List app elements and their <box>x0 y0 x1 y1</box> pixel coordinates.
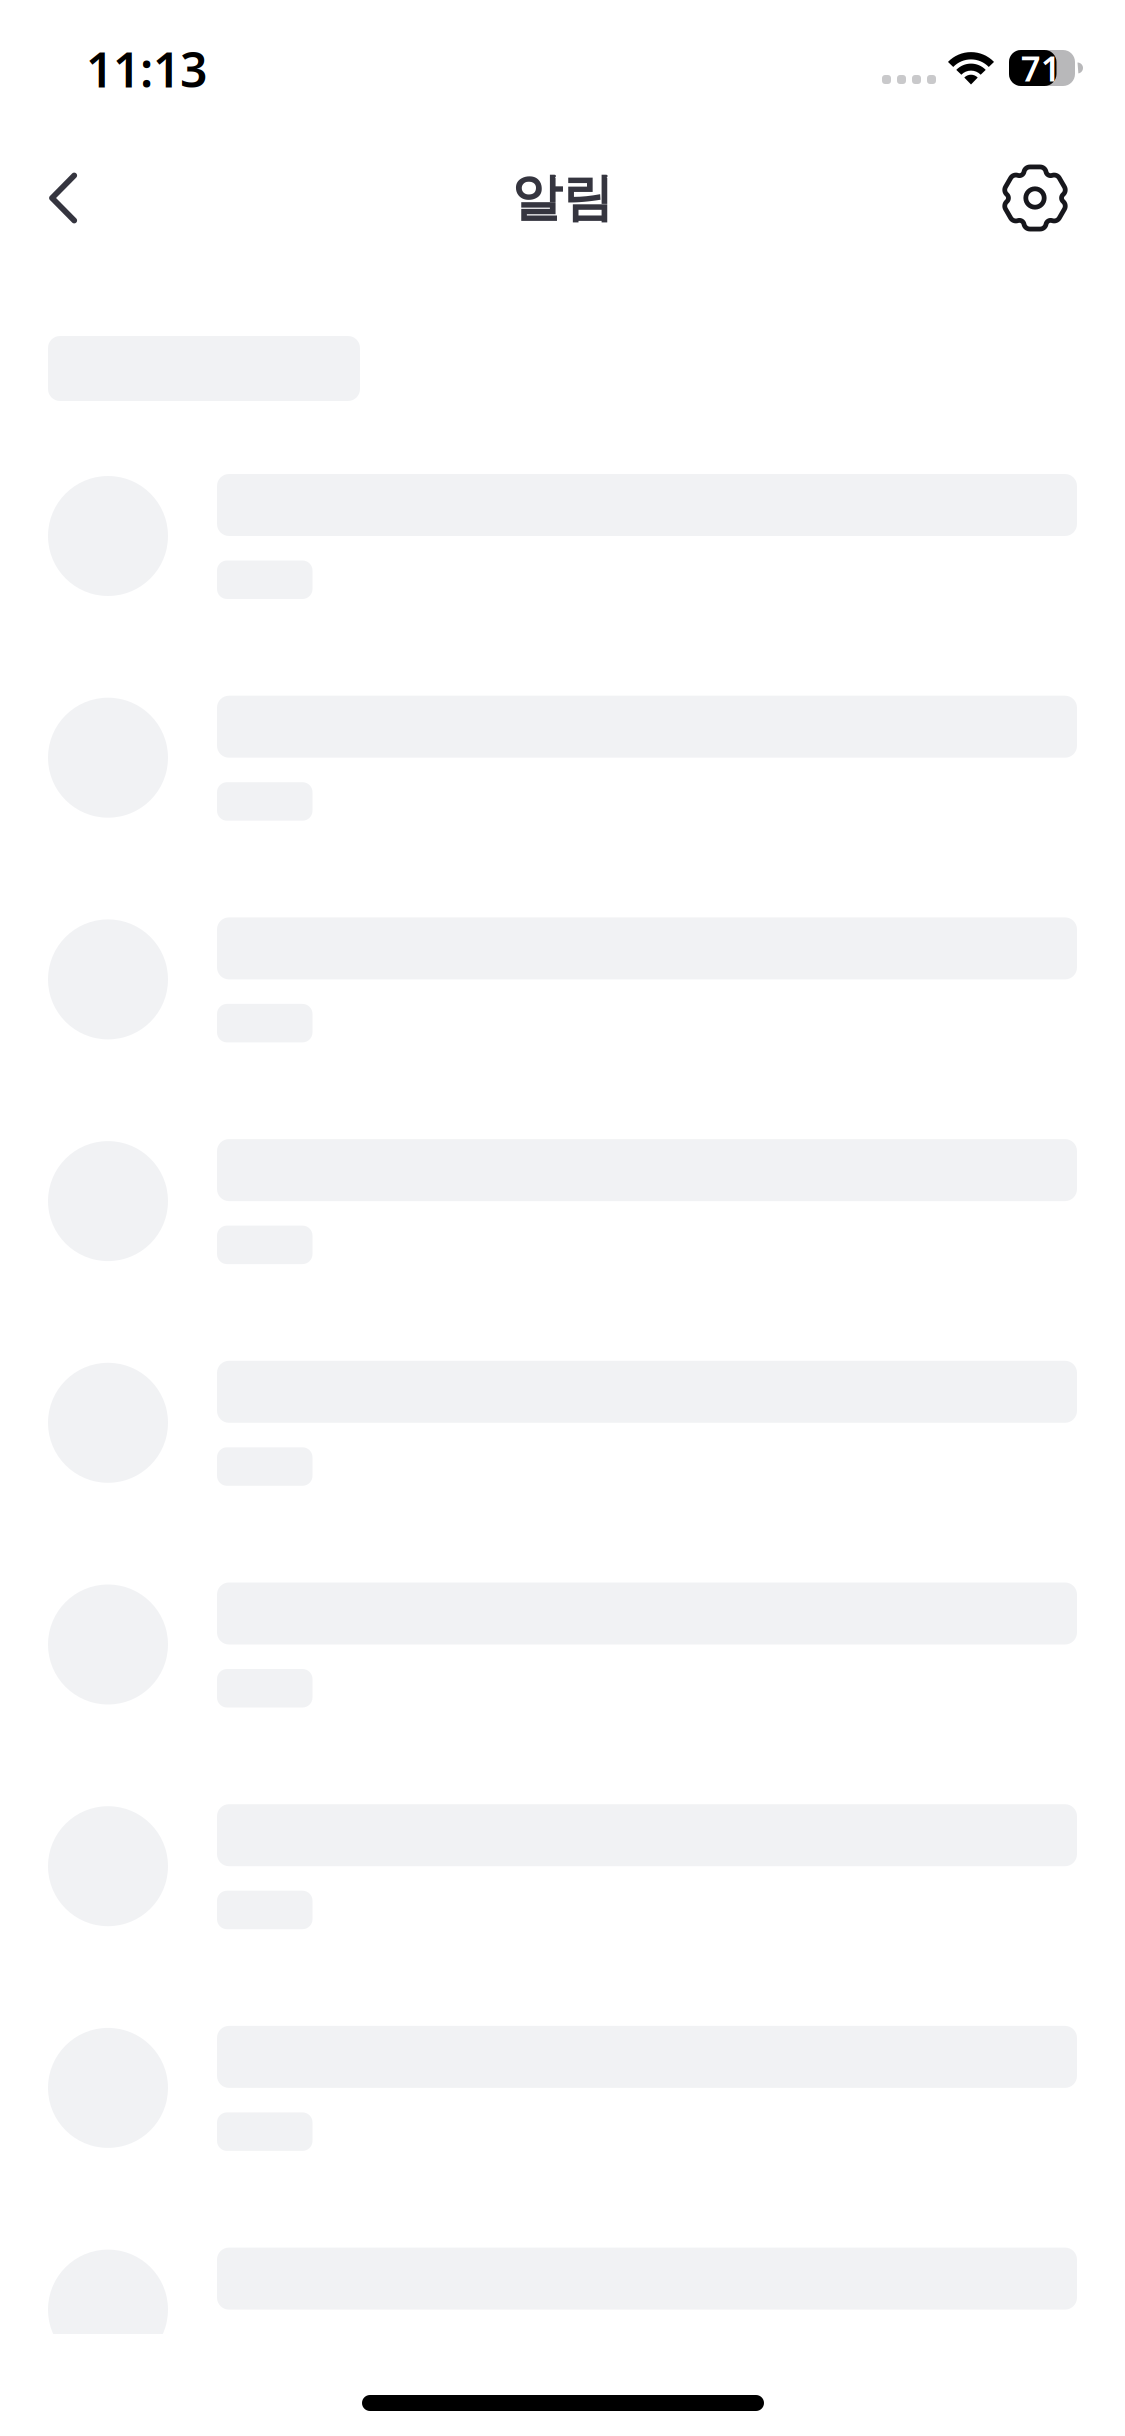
staticText: 11:13 <box>86 37 207 101</box>
staticText: 71 <box>1021 45 1061 91</box>
button[interactable]: Loading notification <box>0 1584 1125 1806</box>
staticText: 알림 <box>511 167 613 229</box>
button[interactable]: Loading notification <box>0 2250 1125 2436</box>
button[interactable]: Loading notification <box>0 1363 1125 1584</box>
button[interactable]: Loading notification <box>0 919 1125 1141</box>
button[interactable]: Loading notification <box>0 2028 1125 2250</box>
button[interactable]: Loading notification <box>0 476 1125 698</box>
button[interactable]: Loading notification <box>0 1806 1125 2028</box>
button[interactable]: Loading notification <box>0 698 1125 919</box>
button[interactable]: Loading notification <box>0 1141 1125 1363</box>
button[interactable]: Settings <box>987 150 1083 246</box>
button[interactable]: Back <box>15 150 111 246</box>
